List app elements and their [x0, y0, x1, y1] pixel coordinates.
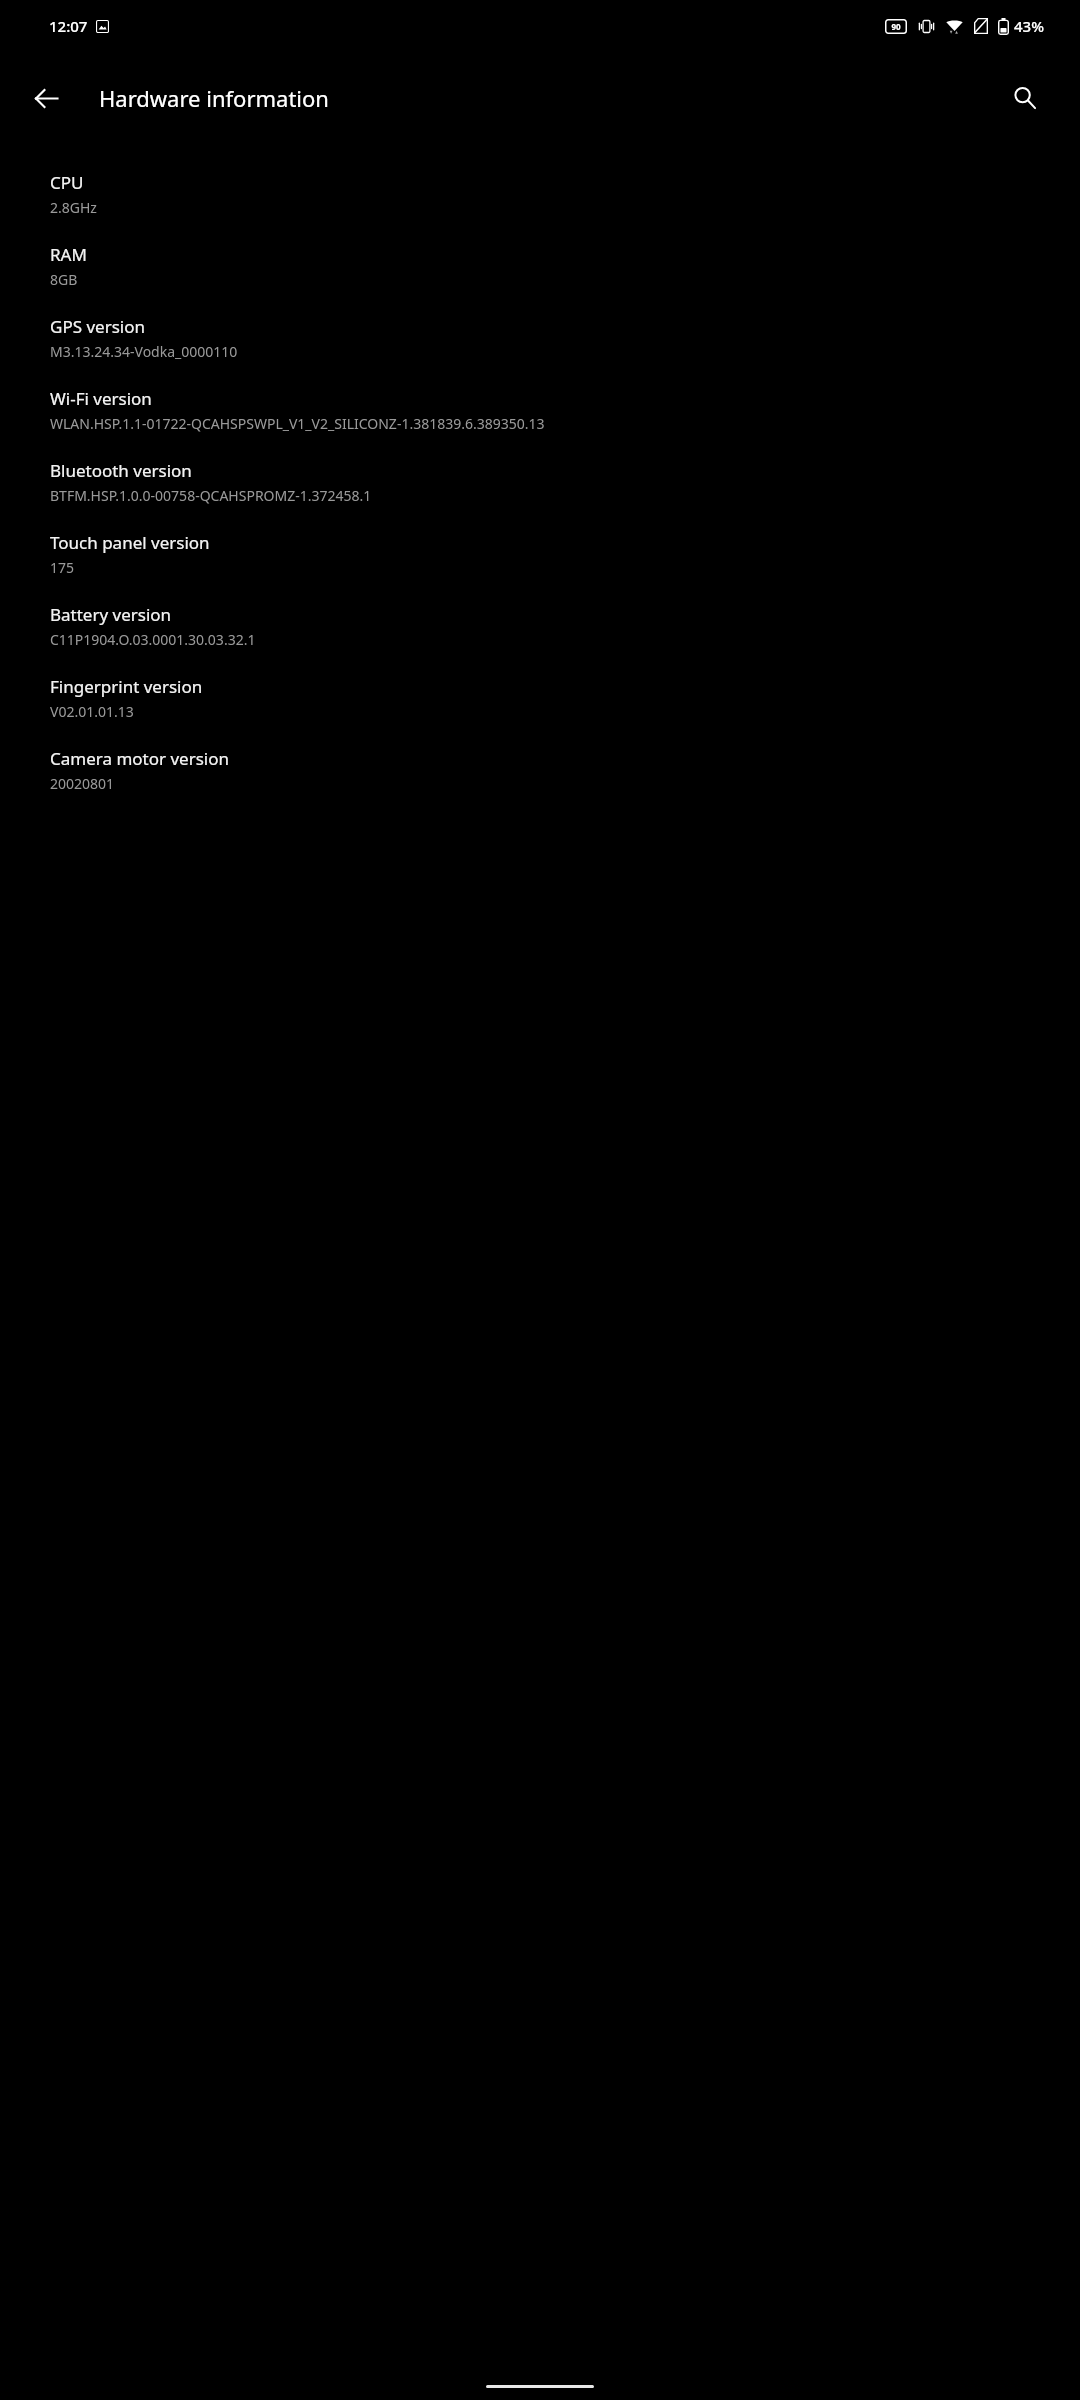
button[interactable]: Wi-Fi version	[0, 374, 1080, 446]
staticText: V02.01.01.13	[50, 702, 134, 721]
staticText: 8GB	[50, 270, 78, 289]
button[interactable]: Search	[993, 66, 1057, 130]
button[interactable]: Back	[14, 66, 78, 130]
button[interactable]: Touch panel version	[0, 518, 1080, 590]
button[interactable]: RAM	[0, 230, 1080, 302]
staticText: C11P1904.O.03.0001.30.03.32.1	[50, 630, 256, 649]
staticText: 2.8GHz	[50, 198, 97, 217]
staticText: 20020801	[50, 774, 115, 793]
staticText: Bluetooth version	[50, 459, 192, 482]
staticText: 43%	[1014, 16, 1044, 36]
staticText: 175	[50, 558, 75, 577]
button[interactable]: CPU	[0, 158, 1080, 230]
staticText: Fingerprint version	[50, 675, 203, 698]
staticText: M3.13.24.34-Vodka_0000110	[50, 342, 238, 361]
staticText: GPS version	[50, 315, 145, 338]
staticText: Camera motor version	[50, 747, 230, 770]
staticText: CPU	[50, 171, 84, 194]
staticText: Touch panel version	[50, 531, 210, 554]
staticText: 90	[891, 21, 901, 32]
staticText: BTFM.HSP.1.0.0-00758-QCAHSPROMZ-1.372458…	[50, 486, 372, 505]
staticText: Hardware information	[99, 83, 329, 113]
button[interactable]: GPS version	[0, 302, 1080, 374]
button[interactable]: Camera motor version	[0, 734, 1080, 806]
button[interactable]: Battery version	[0, 590, 1080, 662]
staticText: 12:07	[49, 16, 88, 36]
staticText: WLAN.HSP.1.1-01722-QCAHSPSWPL_V1_V2_SILI…	[50, 414, 545, 433]
staticText: RAM	[50, 243, 87, 266]
staticText: Wi-Fi version	[50, 387, 152, 410]
button[interactable]: Bluetooth version	[0, 446, 1080, 518]
staticText: Battery version	[50, 603, 172, 626]
button[interactable]: Fingerprint version	[0, 662, 1080, 734]
